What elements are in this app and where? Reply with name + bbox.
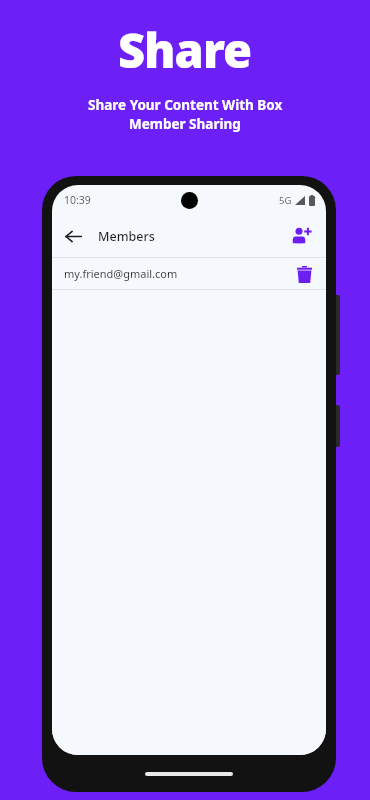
staticText: 5G (279, 194, 292, 207)
staticText: Members (98, 228, 155, 245)
button[interactable]: Delete member (291, 261, 317, 287)
staticText: Member Sharing (129, 115, 241, 133)
staticText: Share (118, 18, 252, 82)
staticText: my.friend@gmail.com (64, 266, 291, 281)
button[interactable]: Add member (284, 219, 318, 253)
staticText: 10:39 (64, 193, 91, 207)
button[interactable]: Back (56, 219, 90, 253)
staticText: Share Your Content With Box (88, 96, 283, 114)
button[interactable]: my.friend@gmail.com (52, 258, 326, 289)
